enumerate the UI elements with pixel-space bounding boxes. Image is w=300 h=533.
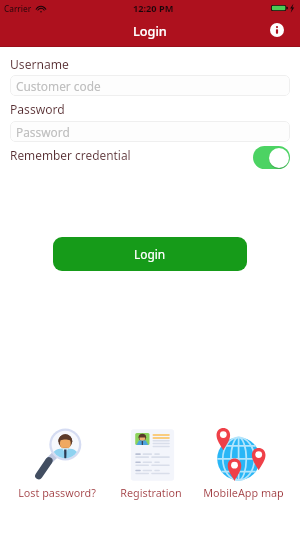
button[interactable]: Remember credential — [253, 146, 290, 169]
button[interactable]: Login — [53, 237, 247, 271]
staticText: Carrier — [4, 3, 32, 14]
button[interactable]: MobileApp map — [197, 428, 290, 500]
staticText: Login — [133, 22, 167, 39]
button[interactable]: Lost password? — [10, 428, 104, 500]
staticText: Password — [10, 101, 65, 117]
staticText: Lost password? — [18, 485, 96, 500]
staticText: Username — [10, 56, 69, 72]
button[interactable]: Password — [10, 121, 290, 142]
button[interactable]: Registration — [104, 428, 197, 500]
staticText: 12:20 PM — [133, 2, 174, 15]
staticText: MobileApp map — [203, 485, 284, 500]
staticText: Registration — [120, 485, 182, 500]
staticText: Remember credential — [10, 147, 131, 163]
staticText: Password — [16, 124, 70, 140]
button[interactable]: Info — [265, 18, 289, 42]
staticText: Login — [134, 246, 166, 262]
staticText: Customer code — [16, 78, 101, 94]
button[interactable]: Customer code — [10, 75, 290, 96]
